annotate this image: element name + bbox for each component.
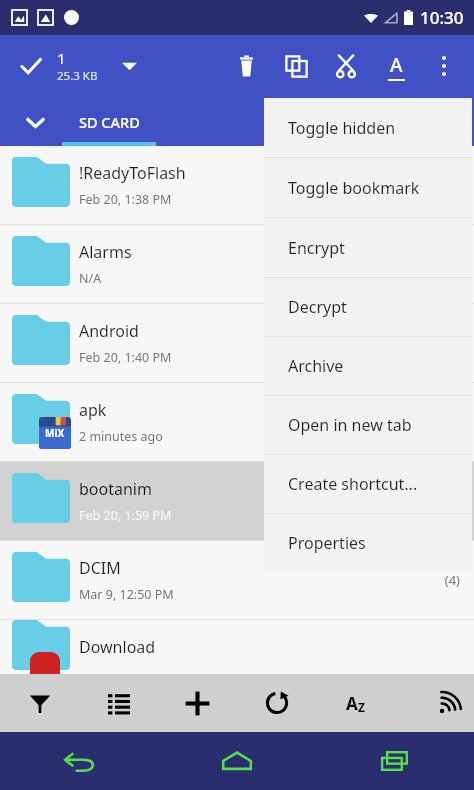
staticText: apk — [79, 399, 107, 421]
button[interactable]: Network — [395, 674, 474, 732]
button[interactable]: Create shortcut... — [264, 455, 472, 513]
button[interactable]: Toggle hidden — [264, 98, 472, 157]
button[interactable]: Rename — [378, 48, 414, 84]
staticText: SD CARD — [79, 112, 140, 132]
button[interactable]: Cut — [328, 48, 364, 84]
staticText: Mar 9, 12:50 PM — [79, 586, 174, 603]
button[interactable]: Toggle bookmark — [264, 158, 472, 217]
staticText: Encrypt — [288, 237, 345, 259]
staticText: A — [346, 692, 358, 715]
button[interactable]: Archive — [264, 337, 472, 395]
button[interactable]: 1 — [57, 48, 98, 84]
button[interactable]: Android — [0, 304, 474, 382]
button[interactable]: !ReadyToFlash — [0, 146, 474, 224]
button[interactable]: Recents — [316, 732, 474, 790]
staticText: 1 — [57, 48, 66, 68]
button[interactable]: Home — [158, 732, 316, 790]
staticText: !ReadyToFlash — [79, 162, 186, 184]
staticText: A — [390, 52, 403, 78]
button[interactable]: Encrypt — [264, 218, 472, 277]
button[interactable]: Back — [0, 732, 158, 790]
button[interactable]: DCIM — [0, 541, 474, 619]
staticText: Decrypt — [288, 296, 347, 318]
staticText: Feb 20, 1:38 PM — [79, 191, 172, 208]
button[interactable]: Copy — [278, 48, 314, 84]
staticText: 10:30 — [420, 6, 464, 29]
button[interactable]: Add — [158, 674, 237, 732]
button[interactable]: Properties — [264, 514, 472, 572]
staticText: Properties — [288, 532, 366, 554]
button[interactable]: SD CARD — [62, 97, 156, 146]
button[interactable]: Sort — [316, 674, 395, 732]
staticText: DCIM — [79, 557, 121, 579]
button[interactable]: Refresh — [237, 674, 316, 732]
button[interactable]: Decrypt — [264, 278, 472, 336]
staticText: Alarms — [79, 241, 132, 263]
staticText: Archive — [288, 355, 344, 377]
staticText: 2 minutes ago — [79, 428, 163, 445]
staticText: bootanim — [79, 478, 152, 500]
staticText: Feb 20, 1:59 PM — [79, 507, 172, 524]
staticText: Feb 20, 1:40 PM — [79, 349, 172, 366]
staticText: (4) — [444, 571, 460, 589]
staticText: MiX — [45, 426, 65, 440]
button[interactable]: Select all — [14, 49, 48, 83]
staticText: Toggle hidden — [288, 117, 396, 139]
button[interactable]: More selection options — [114, 51, 144, 81]
button[interactable]: bootanim — [0, 462, 474, 540]
staticText: Download — [79, 636, 156, 658]
button[interactable]: Delete — [228, 48, 264, 84]
staticText: Create shortcut... — [288, 473, 418, 495]
staticText: Toggle bookmark — [288, 177, 420, 199]
staticText: N/A — [79, 270, 102, 287]
staticText: Z — [358, 699, 365, 715]
staticText: Open in new tab — [288, 414, 412, 436]
button[interactable]: MiX — [0, 383, 474, 461]
button[interactable]: View mode — [79, 674, 158, 732]
button[interactable]: Open in new tab — [264, 396, 472, 454]
button[interactable]: Expand drawer — [18, 105, 52, 139]
button[interactable]: More options — [426, 48, 462, 84]
staticText: Android — [79, 320, 139, 342]
button[interactable]: Filter — [0, 674, 79, 732]
button[interactable]: Alarms — [0, 225, 474, 303]
staticText: 25.3 KB — [57, 68, 98, 84]
button[interactable]: Download — [0, 620, 474, 674]
